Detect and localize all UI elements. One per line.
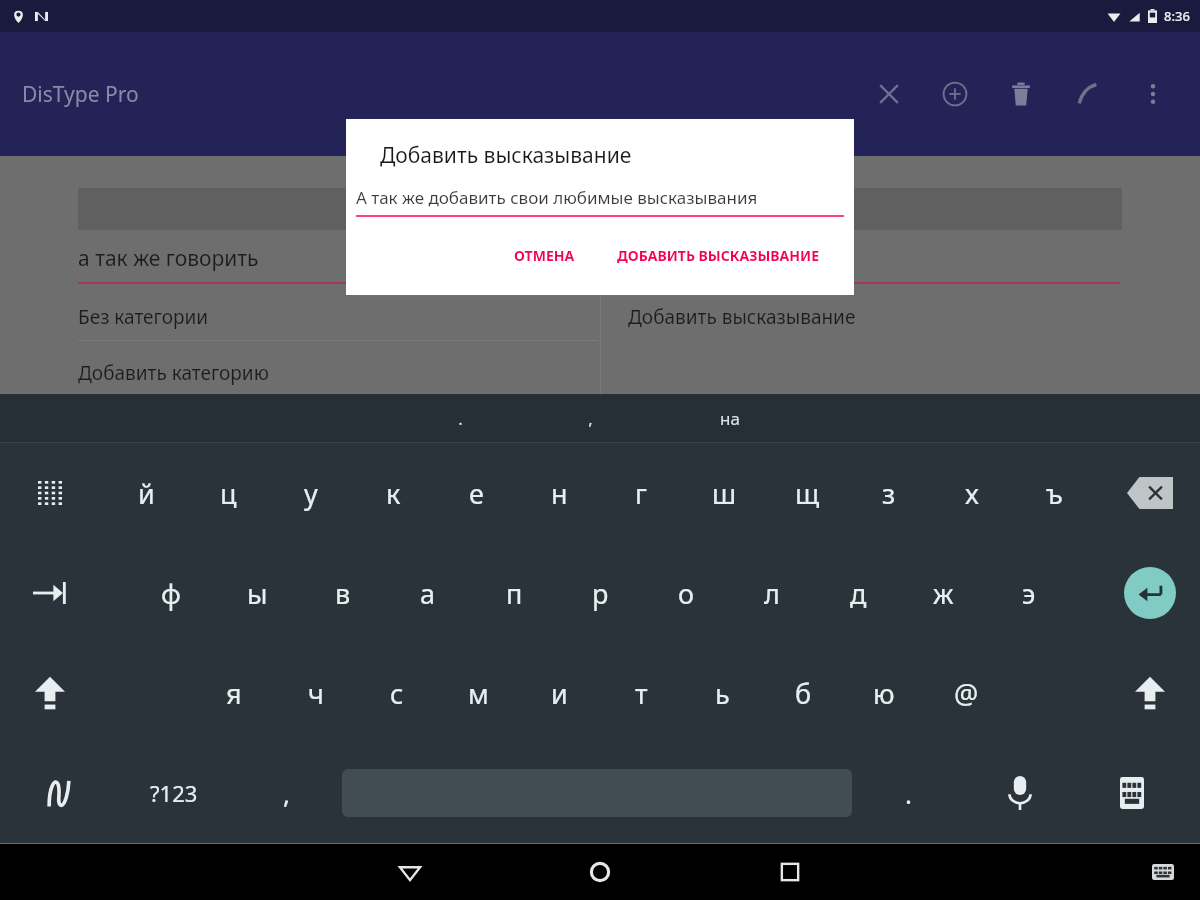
button[interactable]: , — [520, 394, 660, 442]
staticText: DisType Pro — [22, 80, 139, 109]
button[interactable]: Добавить высказывание — [628, 304, 856, 330]
staticText: ОТМЕНА — [514, 246, 575, 265]
button[interactable]: Backspace — [1100, 445, 1200, 541]
button[interactable]: м — [441, 645, 515, 741]
button[interactable]: й — [109, 445, 183, 541]
button[interactable]: о — [649, 545, 723, 641]
staticText: я — [226, 675, 242, 712]
button[interactable]: More options — [1120, 61, 1186, 127]
button[interactable]: т — [604, 645, 678, 741]
staticText: л — [764, 575, 780, 612]
button[interactable]: ф — [134, 545, 208, 641]
button[interactable]: Добавить категорию — [78, 360, 269, 386]
button[interactable]: х — [935, 445, 1009, 541]
staticText: р — [592, 575, 609, 612]
button[interactable]: г — [604, 445, 678, 541]
button[interactable]: . — [400, 394, 520, 442]
staticText: и — [551, 675, 568, 712]
staticText: к — [386, 475, 401, 512]
staticText: ?123 — [150, 778, 198, 808]
button[interactable]: и — [522, 645, 596, 741]
staticText: @ — [954, 675, 979, 712]
staticText: на — [720, 407, 740, 430]
staticText: ж — [933, 575, 954, 612]
button[interactable]: Recents — [760, 844, 820, 900]
staticText: п — [506, 575, 523, 612]
staticText: в — [335, 575, 351, 612]
button[interactable]: Handwriting — [0, 745, 118, 841]
staticText: , — [283, 776, 290, 811]
button[interactable]: Keyboard indicator — [1146, 855, 1180, 889]
button[interactable]: ж — [906, 545, 980, 641]
staticText: 8:36 — [1164, 7, 1190, 25]
staticText: ы — [247, 575, 268, 612]
button[interactable]: Comma — [230, 745, 342, 841]
staticText: . — [458, 407, 463, 430]
button[interactable]: Add — [922, 61, 988, 127]
button[interactable]: Delete — [988, 61, 1054, 127]
staticText: , — [588, 407, 593, 430]
staticText: а — [420, 575, 436, 612]
button[interactable]: Change keyboard — [1076, 745, 1188, 841]
button[interactable]: а — [391, 545, 465, 641]
staticText: г — [635, 475, 647, 512]
button[interactable]: б — [766, 645, 840, 741]
button[interactable]: ДОБАВИТЬ ВЫСКАЗЫВАНИЕ — [609, 238, 828, 273]
button[interactable]: э — [992, 545, 1066, 641]
button[interactable]: Tab — [0, 545, 100, 641]
staticText: о — [678, 575, 695, 612]
button[interactable]: Shift — [0, 645, 100, 741]
button[interactable]: н — [522, 445, 596, 541]
staticText: т — [635, 675, 648, 712]
button[interactable]: Voice input — [964, 745, 1076, 841]
button[interactable] — [78, 188, 1122, 230]
button[interactable]: на — [660, 394, 800, 442]
staticText: Добавить высказывание — [380, 141, 632, 170]
staticText: . — [905, 776, 912, 811]
button[interactable]: Enter — [1100, 545, 1200, 641]
button[interactable]: з — [852, 445, 926, 541]
staticText: А так же добавить свои любимые высказыва… — [356, 186, 758, 209]
button[interactable]: ш — [687, 445, 761, 541]
button[interactable]: Close — [856, 61, 922, 127]
button[interactable]: ъ — [1017, 445, 1091, 541]
staticText: ю — [873, 675, 895, 712]
staticText: й — [138, 475, 155, 512]
staticText: э — [1022, 575, 1036, 612]
button[interactable]: ч — [279, 645, 353, 741]
button[interactable]: в — [306, 545, 380, 641]
button[interactable]: д — [821, 545, 895, 641]
button[interactable]: Symbols — [118, 745, 230, 841]
button[interactable]: п — [477, 545, 551, 641]
button[interactable]: Call — [1054, 61, 1120, 127]
button[interactable]: Без категории — [78, 304, 209, 330]
staticText: д — [850, 575, 867, 612]
button[interactable]: с — [360, 645, 434, 741]
staticText: н — [551, 475, 568, 512]
button[interactable]: ю — [847, 645, 921, 741]
button[interactable]: я — [197, 645, 271, 741]
button[interactable]: е — [439, 445, 513, 541]
button[interactable]: л — [735, 545, 809, 641]
staticText: с — [390, 675, 404, 712]
staticText: е — [469, 475, 484, 512]
staticText: ДОБАВИТЬ ВЫСКАЗЫВАНИЕ — [617, 246, 820, 265]
button[interactable]: р — [563, 545, 637, 641]
button[interactable]: ц — [191, 445, 265, 541]
button[interactable]: щ — [770, 445, 844, 541]
staticText: ш — [712, 475, 737, 512]
button[interactable]: к — [356, 445, 430, 541]
staticText: х — [965, 475, 979, 512]
button[interactable]: Back — [380, 844, 440, 900]
button[interactable]: Period — [852, 745, 964, 841]
button[interactable]: ы — [220, 545, 294, 641]
button[interactable]: @ — [929, 645, 1003, 741]
button[interactable]: Shift — [1100, 645, 1200, 741]
button[interactable]: Home — [570, 844, 630, 900]
button[interactable]: у — [274, 445, 348, 541]
button[interactable]: ь — [685, 645, 759, 741]
staticText: з — [882, 475, 896, 512]
button[interactable]: ОТМЕНА — [502, 238, 587, 273]
button[interactable]: Symbols grid — [0, 445, 100, 541]
